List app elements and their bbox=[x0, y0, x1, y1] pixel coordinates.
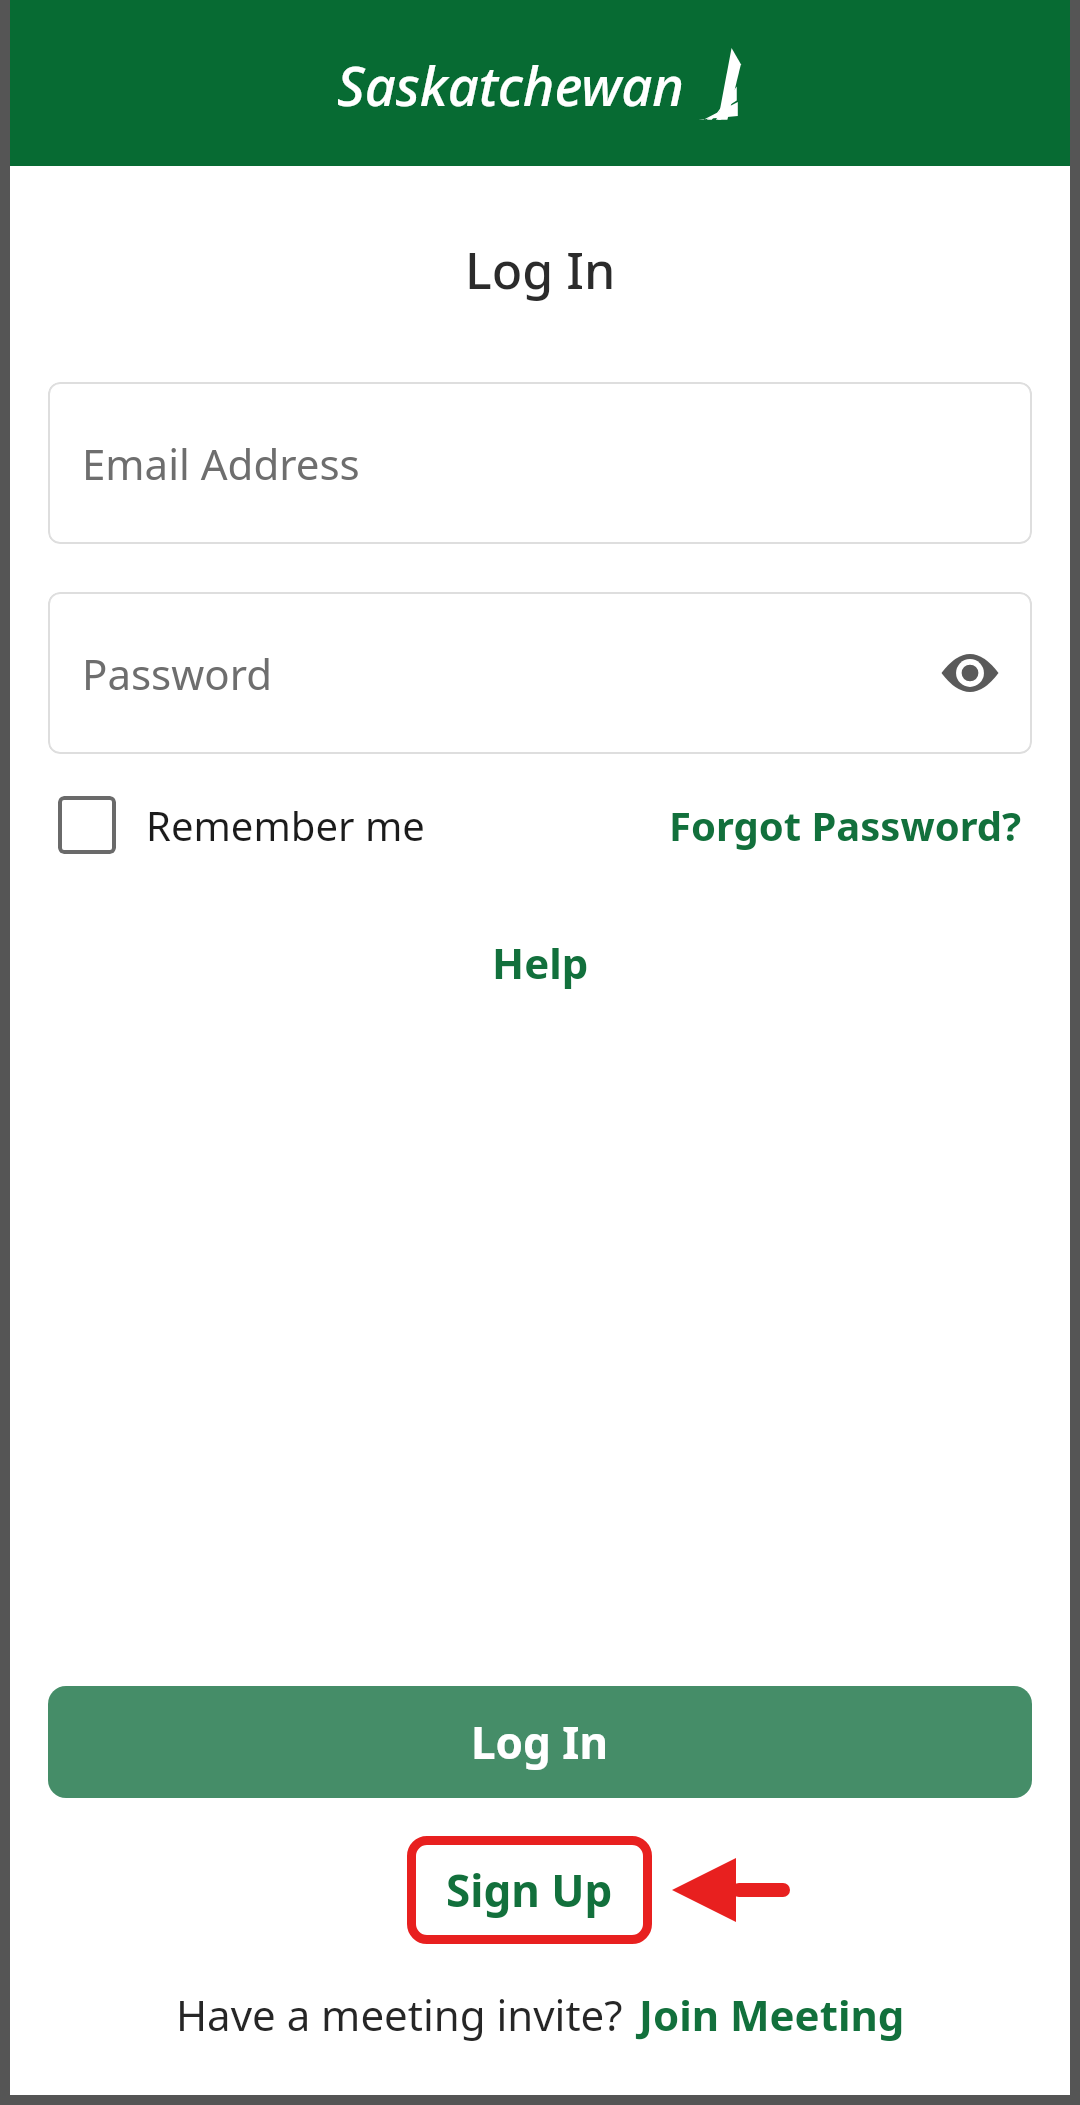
staticText: Saskatchewan bbox=[337, 48, 685, 122]
button[interactable]: Show password bbox=[934, 637, 1006, 709]
staticText: Forgot Password? bbox=[669, 798, 1022, 852]
button[interactable]: Help bbox=[476, 930, 605, 995]
staticText: Log In bbox=[471, 1712, 609, 1772]
button[interactable]: Sign Up bbox=[407, 1836, 652, 1944]
staticText: Have a meeting invite? bbox=[176, 1986, 623, 2043]
staticText: Help bbox=[492, 934, 589, 991]
button[interactable]: Forgot Password? bbox=[669, 798, 1022, 852]
staticText: Password bbox=[82, 645, 272, 702]
staticText: Remember me bbox=[146, 798, 425, 852]
button[interactable]: Remember me bbox=[58, 796, 425, 854]
button[interactable]: Log In bbox=[48, 1686, 1032, 1798]
staticText: Sign Up bbox=[446, 1860, 613, 1920]
staticText: Log In bbox=[465, 236, 616, 304]
staticText: Email Address bbox=[82, 435, 360, 492]
button[interactable]: Join Meeting bbox=[639, 1986, 905, 2043]
button[interactable]: Password bbox=[48, 592, 1032, 754]
button[interactable]: Email Address bbox=[48, 382, 1032, 544]
staticText: Join Meeting bbox=[639, 1986, 905, 2043]
